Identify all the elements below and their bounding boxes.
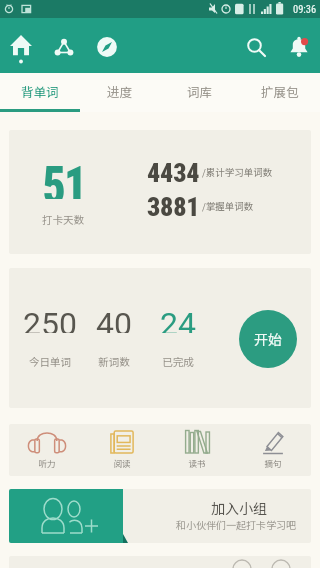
button[interactable]: 背单词 (0, 73, 80, 109)
button[interactable]: 250 (9, 268, 311, 408)
button[interactable]: Explore (91, 31, 123, 63)
staticText: 开始 (254, 329, 282, 349)
staticText: /掌握单词数 (202, 199, 254, 213)
staticText: 打卡天数 (23, 212, 103, 227)
button[interactable]: 51 (9, 130, 311, 254)
staticText: 24 (160, 305, 196, 333)
button[interactable]: 加入小组 (9, 489, 311, 543)
button[interactable]: 词库 (160, 73, 240, 109)
staticText: 摘句 (264, 457, 282, 469)
staticText: 新词数 (98, 354, 130, 368)
staticText: 已完成 (162, 354, 194, 368)
button[interactable]: 进度 (80, 73, 160, 109)
staticText: 阅读 (113, 457, 131, 469)
staticText: 今日单词 (29, 354, 71, 368)
staticText: 和小伙伴们一起打卡学习吧 (140, 517, 311, 531)
button[interactable]: 听力 (9, 424, 311, 476)
staticText: 背单词 (21, 82, 59, 100)
staticText: 09:36 (293, 3, 317, 15)
button[interactable]: 摘句 (235, 424, 311, 476)
staticText: 加入小组 (143, 498, 311, 518)
staticText: 3881 (147, 192, 200, 219)
button[interactable] (9, 556, 311, 568)
button[interactable]: 扩展包 (240, 73, 320, 109)
staticText: 250 (23, 305, 77, 333)
staticText: 听力 (38, 457, 56, 469)
staticText: 4434 (147, 158, 200, 185)
staticText: 扩展包 (261, 82, 299, 100)
button[interactable]: 听力 (9, 424, 84, 476)
staticText: 读书 (188, 457, 206, 469)
button[interactable]: Search (240, 31, 272, 63)
button[interactable]: Home (5, 31, 37, 63)
button[interactable]: 阅读 (84, 424, 159, 476)
staticText: 40 (96, 305, 132, 333)
staticText: 进度 (107, 82, 133, 100)
button[interactable]: Friends (48, 31, 80, 63)
staticText: /累计学习单词数 (202, 165, 273, 179)
button[interactable]: 读书 (159, 424, 235, 476)
button[interactable]: 开始 (239, 310, 297, 368)
staticText: 词库 (187, 82, 213, 100)
button[interactable]: Notifications (283, 31, 315, 63)
staticText: 51 (43, 155, 85, 199)
